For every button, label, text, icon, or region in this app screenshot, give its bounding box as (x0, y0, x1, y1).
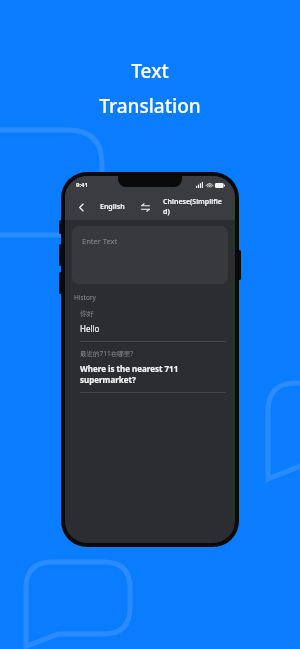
button[interactable]: English (100, 202, 125, 212)
button[interactable]: Enter Text (72, 226, 228, 284)
staticText: Translation (99, 93, 201, 119)
staticText: Enter Text (82, 236, 118, 246)
button[interactable]: 最近的711在哪里? (72, 349, 228, 393)
staticText: Hello (80, 323, 100, 334)
button[interactable]: Back (74, 200, 88, 214)
staticText: English (100, 202, 125, 212)
staticText: 9:41 (76, 181, 88, 189)
staticText: Chinese(Simplified) (163, 197, 226, 217)
staticText: 最近的711在哪里? (80, 349, 133, 358)
staticText: Where is the nearest 711 supermarket? (80, 363, 226, 385)
staticText: Text (131, 58, 169, 84)
staticText: 你好 (80, 309, 94, 318)
button[interactable]: Chinese(Simplified) (163, 197, 226, 217)
button[interactable]: 你好 (72, 309, 228, 342)
staticText: History (74, 293, 96, 302)
button[interactable]: Swap languages (139, 201, 151, 213)
